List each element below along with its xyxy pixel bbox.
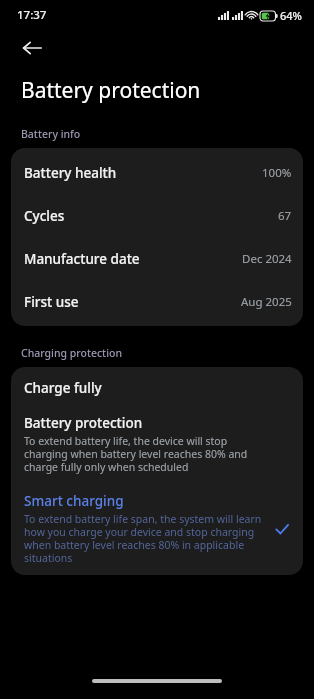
button[interactable]: Battery health [11, 151, 303, 194]
button[interactable]: Back [14, 30, 50, 66]
staticText: 100% [262, 165, 292, 181]
staticText: 67 [278, 208, 292, 224]
staticText: Manufacture date [24, 250, 242, 268]
staticText: Battery protection [21, 76, 201, 105]
button[interactable]: First use [11, 280, 303, 323]
staticText: To extend battery life, the device will … [24, 434, 267, 474]
staticText: Smart charging [24, 492, 124, 510]
button[interactable]: Charge fully [11, 367, 303, 408]
staticText: Aug 2025 [241, 294, 292, 310]
staticText: Charge fully [24, 379, 102, 397]
staticText: Dec 2024 [242, 251, 292, 267]
staticText: Cycles [24, 207, 278, 225]
button[interactable]: Battery protection [11, 408, 303, 480]
staticText: Battery info [21, 127, 81, 141]
staticText: 17:37 [17, 7, 47, 23]
button[interactable]: Manufacture date [11, 237, 303, 280]
staticText: To extend battery life span, the system … [24, 512, 263, 565]
button[interactable]: Smart charging [11, 488, 303, 575]
staticText: Battery health [24, 164, 262, 182]
staticText: First use [24, 293, 241, 311]
button[interactable]: Cycles [11, 194, 303, 237]
staticText: Charging protection [21, 346, 122, 360]
staticText: 64% [280, 8, 302, 23]
staticText: Battery protection [24, 414, 143, 432]
